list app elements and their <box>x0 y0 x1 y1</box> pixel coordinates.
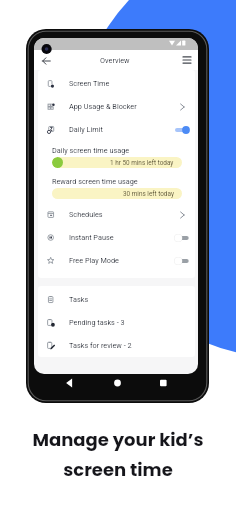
button[interactable]: Tasks for review - 2 <box>38 334 195 357</box>
button[interactable]: Menu <box>180 53 194 67</box>
staticText: App Usage & Blocker <box>69 102 137 111</box>
staticText: Schedules <box>69 210 103 219</box>
staticText: Tasks for review - 2 <box>69 341 132 350</box>
staticText: Manage your kid’s <box>32 427 204 452</box>
button[interactable]: Instant Pause <box>38 226 195 249</box>
staticText: Free Play Mode <box>69 256 119 265</box>
staticText: Overview <box>100 56 130 65</box>
button[interactable]: Pending tasks - 3 <box>38 311 195 334</box>
staticText: Reward screen time usage <box>52 177 138 186</box>
button[interactable]: App Usage & Blocker <box>38 95 195 118</box>
staticText: Daily screen time usage <box>52 146 130 155</box>
staticText: 30 mins left today <box>123 190 174 198</box>
staticText: Instant Pause <box>69 233 114 242</box>
staticText: Daily Limit <box>69 125 103 134</box>
button[interactable]: Tasks <box>38 288 195 311</box>
button[interactable]: Free Play Mode <box>38 249 195 272</box>
staticText: Pending tasks - 3 <box>69 318 125 327</box>
staticText: Screen Time <box>69 79 110 88</box>
button[interactable]: Screen Time <box>38 72 195 95</box>
button[interactable]: Daily Limit <box>38 118 195 141</box>
staticText: 1 hr 50 mins left today <box>110 159 174 167</box>
button[interactable]: Schedules <box>38 203 195 226</box>
staticText: Tasks <box>69 295 89 304</box>
button[interactable]: Back <box>39 53 54 68</box>
staticText: screen time <box>63 457 173 482</box>
